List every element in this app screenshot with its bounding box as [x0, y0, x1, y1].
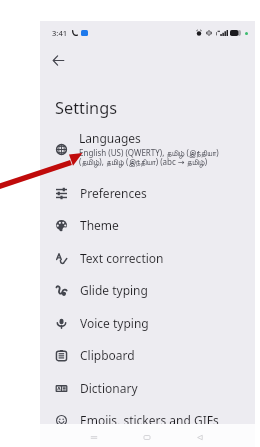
- button[interactable]: Dictionary: [40, 372, 255, 404]
- staticText: English (US) (QWERTY), தமிழ் (இந்தியா) (…: [79, 147, 245, 168]
- button[interactable]: Clipboard: [40, 339, 255, 371]
- button[interactable]: Back: [47, 49, 69, 71]
- staticText: Emojis, stickers and GIFs: [80, 412, 219, 428]
- staticText: Theme: [80, 217, 119, 233]
- staticText: Settings: [55, 97, 118, 119]
- button[interactable]: Theme: [40, 209, 255, 241]
- button[interactable]: Emojis, stickers and GIFs: [40, 404, 255, 436]
- button[interactable]: Voice typing: [40, 307, 255, 339]
- staticText: Voice typing: [80, 315, 149, 331]
- staticText: Clipboard: [80, 347, 135, 363]
- staticText: Glide typing: [80, 282, 148, 298]
- staticText: Languages: [79, 130, 141, 146]
- staticText: Preferences: [80, 185, 147, 201]
- button[interactable]: Home: [136, 426, 158, 447]
- staticText: Text correction: [80, 250, 164, 266]
- button[interactable]: Glide typing: [40, 274, 255, 306]
- staticText: 3:41: [52, 28, 68, 38]
- staticText: Dictionary: [80, 380, 138, 396]
- button[interactable]: Back: [189, 426, 211, 447]
- button[interactable]: Text correction: [40, 242, 255, 274]
- button[interactable]: Preferences: [40, 177, 255, 209]
- button[interactable]: Languages: [40, 125, 255, 169]
- button[interactable]: Recents: [83, 426, 105, 447]
